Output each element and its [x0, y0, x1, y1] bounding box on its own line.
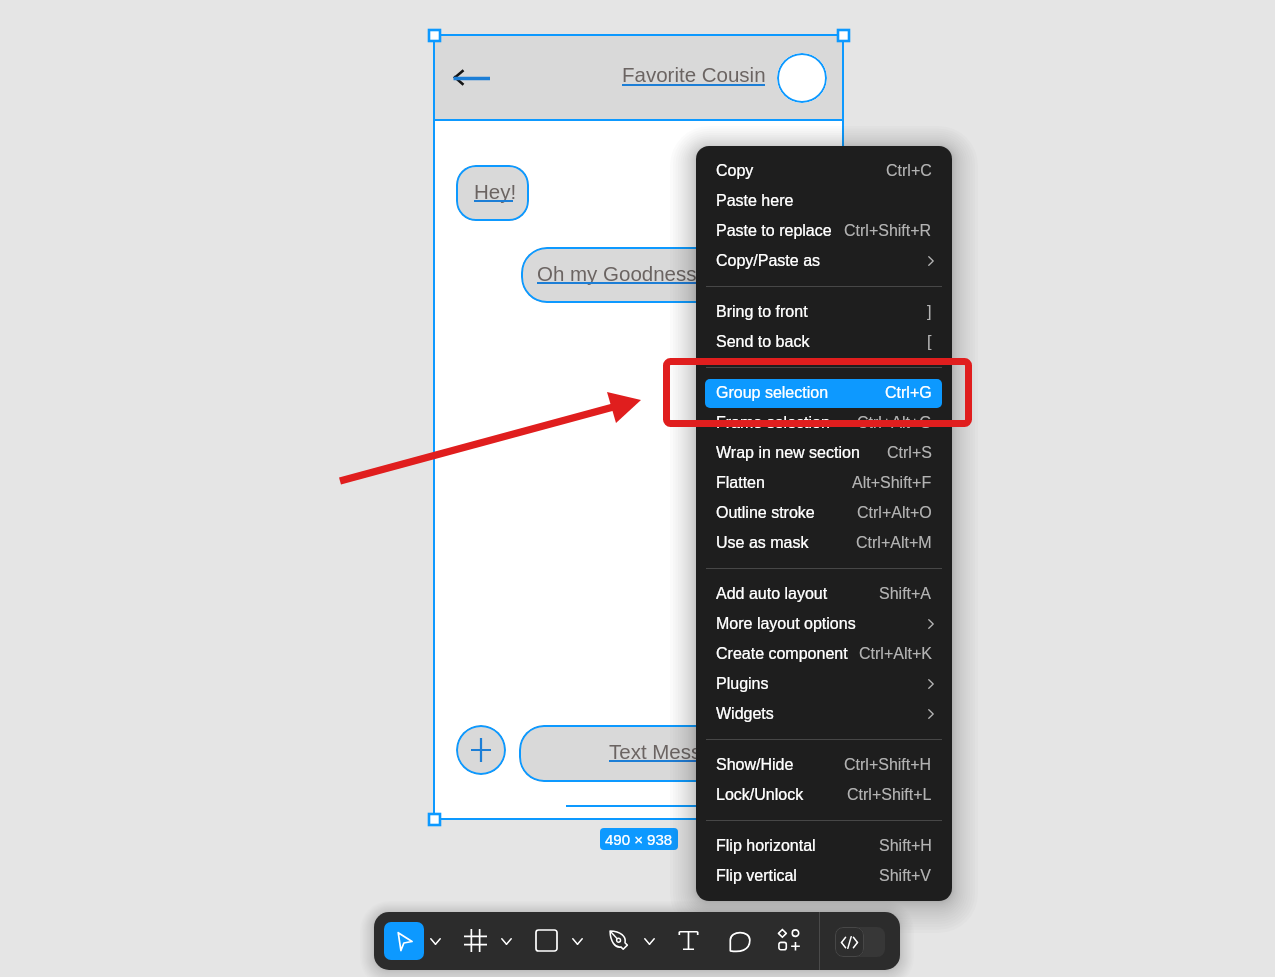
staticText: Flip vertical — [716, 867, 797, 885]
staticText: 490 × 938 — [605, 831, 673, 848]
staticText: Ctrl+Alt+O — [857, 504, 932, 522]
button[interactable]: Create component — [696, 639, 952, 669]
button[interactable]: Send to back — [696, 327, 952, 357]
staticText: Send to back — [716, 333, 810, 351]
button[interactable]: Dev mode — [835, 927, 885, 957]
button[interactable]: Show/Hide — [696, 750, 952, 780]
staticText: Paste here — [716, 192, 794, 210]
button[interactable] — [620, 63, 768, 91]
button[interactable]: More layout options — [696, 609, 952, 639]
staticText: Flip horizontal — [716, 837, 816, 855]
staticText: Ctrl+G — [885, 384, 932, 402]
staticText: Wrap in new section — [716, 444, 860, 462]
button[interactable]: Flip horizontal — [696, 831, 952, 861]
button[interactable]: Group selection — [696, 378, 952, 408]
button[interactable]: Move tool — [384, 922, 424, 960]
staticText: Add auto layout — [716, 585, 828, 603]
button[interactable]: More tool options — [566, 930, 588, 952]
button[interactable]: More tool options — [638, 930, 660, 952]
staticText: Ctrl+Shift+R — [844, 222, 932, 240]
staticText: Shift+V — [879, 867, 932, 885]
button[interactable]: Paste here — [696, 186, 952, 216]
button[interactable]: Oh my Goodness! — [521, 247, 773, 303]
button[interactable]: More tool options — [495, 930, 517, 952]
staticText: Ctrl+Alt+M — [856, 534, 932, 552]
button[interactable]: Widgets — [696, 699, 952, 729]
staticText: Bring to front — [716, 303, 808, 321]
button[interactable]: Back — [448, 61, 500, 95]
button[interactable]: Use as mask — [696, 528, 952, 558]
button[interactable]: Flip vertical — [696, 861, 952, 891]
staticText: ] — [927, 303, 932, 321]
button[interactable]: Actions — [769, 920, 810, 961]
staticText: Ctrl+Shift+H — [844, 756, 932, 774]
button[interactable]: Copy — [696, 156, 952, 186]
staticText: Hey! — [474, 180, 517, 203]
staticText: Alt+Shift+F — [852, 474, 932, 492]
staticText: Plugins — [716, 675, 769, 693]
staticText: Paste to replace — [716, 222, 832, 240]
button[interactable]: Frame tool — [455, 920, 496, 961]
button[interactable]: Add attachment — [456, 725, 506, 775]
staticText: Ctrl+Shift+L — [847, 786, 932, 804]
button[interactable]: Lock/Unlock — [696, 780, 952, 810]
staticText: Use as mask — [716, 534, 809, 552]
staticText: Ctrl+Alt+G — [857, 414, 932, 432]
staticText: Lock/Unlock — [716, 786, 804, 804]
button[interactable]: Shape tool — [526, 920, 567, 961]
button[interactable]: Paste to replace — [696, 216, 952, 246]
staticText: Create component — [716, 645, 848, 663]
staticText: Ctrl+C — [886, 162, 932, 180]
staticText: Shift+H — [879, 837, 932, 855]
button[interactable]: Plugins — [696, 669, 952, 699]
staticText: Copy/Paste as — [716, 252, 821, 270]
staticText: Flatten — [716, 474, 765, 492]
button[interactable]: Contact avatar — [777, 53, 827, 103]
staticText: Ctrl+Alt+K — [859, 645, 932, 663]
staticText: [ — [927, 333, 932, 351]
button[interactable]: Hey! — [456, 165, 529, 221]
button[interactable]: Text Message — [519, 725, 813, 782]
staticText: Group selection — [716, 384, 829, 402]
button[interactable]: Wrap in new section — [696, 438, 952, 468]
button[interactable]: More tool options — [424, 930, 446, 952]
staticText: More layout options — [716, 615, 856, 633]
button[interactable]: 490 × 938 — [600, 828, 678, 850]
button[interactable]: Flatten — [696, 468, 952, 498]
button[interactable]: Add auto layout — [696, 579, 952, 609]
staticText: Copy — [716, 162, 754, 180]
staticText: Oh my Goodness! — [537, 262, 703, 285]
button[interactable]: Bring to front — [696, 297, 952, 327]
button[interactable]: Text tool — [668, 920, 709, 961]
staticText: Outline stroke — [716, 504, 815, 522]
staticText: Widgets — [716, 705, 774, 723]
button[interactable]: Pen tool — [599, 920, 640, 961]
button[interactable]: Comment — [719, 920, 760, 961]
staticText: Favorite Cousin — [622, 63, 766, 86]
staticText: Shift+A — [879, 585, 932, 603]
staticText: Show/Hide — [716, 756, 794, 774]
button[interactable]: Outline stroke — [696, 498, 952, 528]
button[interactable]: Copy/Paste as — [696, 246, 952, 276]
staticText: Ctrl+S — [887, 444, 932, 462]
staticText: Text Message — [609, 740, 736, 763]
button[interactable]: Frame selection — [696, 408, 952, 438]
staticText: Frame selection — [716, 414, 830, 432]
